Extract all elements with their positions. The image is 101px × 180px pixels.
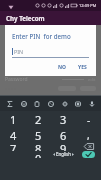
button[interactable]: 9 — [51, 141, 76, 151]
button[interactable]: 5 — [26, 128, 51, 141]
button[interactable]: 0 — [26, 151, 51, 158]
button[interactable]: 4 — [0, 128, 26, 141]
staticText: 5 — [35, 128, 42, 141]
button[interactable]: Microphone — [86, 98, 97, 109]
button[interactable]: English — [51, 151, 76, 158]
staticText: 12:09 PM — [79, 3, 97, 8]
button[interactable]: 1 — [0, 111, 26, 128]
button[interactable]: , — [76, 128, 101, 141]
button[interactable]: YES — [76, 63, 89, 72]
button[interactable]: Voice typing — [4, 98, 15, 109]
staticText: YES — [78, 64, 87, 71]
staticText: Password — [5, 76, 28, 83]
button[interactable]: Emoji — [18, 98, 29, 109]
staticText: 7 — [10, 141, 17, 151]
button[interactable]: NO — [56, 63, 69, 72]
button[interactable]: 2 — [26, 111, 51, 128]
button[interactable]: Settings — [59, 98, 70, 109]
staticText: 2 — [35, 112, 42, 127]
button[interactable]: - — [76, 111, 101, 128]
staticText: edit — [88, 77, 96, 83]
staticText: 6 — [60, 128, 67, 141]
staticText: 0 — [35, 151, 42, 158]
staticText: 8 — [35, 141, 42, 151]
button[interactable]: Backspace — [76, 141, 101, 151]
button[interactable]: Enter — [76, 151, 101, 158]
staticText: 9 — [60, 141, 67, 151]
staticText: English — [56, 151, 71, 157]
staticText: PIN — [14, 48, 24, 55]
button[interactable]: 7 — [0, 141, 26, 151]
staticText: Enter PIN for demo — [12, 32, 71, 40]
button[interactable]: Theme — [45, 98, 56, 109]
staticText: 4 — [10, 128, 17, 141]
button[interactable]: 6 — [51, 128, 76, 141]
button[interactable]: 3 — [51, 111, 76, 128]
staticText: , — [87, 128, 90, 141]
staticText: - — [87, 113, 91, 127]
button[interactable]: Clipboard — [31, 98, 42, 109]
button[interactable]: One handed mode — [72, 98, 83, 109]
staticText: NO — [58, 64, 67, 71]
staticText: 3 — [60, 112, 67, 127]
staticText: 1 — [10, 112, 17, 127]
staticText: Chy Telecom — [6, 14, 45, 22]
button[interactable]: 8 — [26, 141, 51, 151]
